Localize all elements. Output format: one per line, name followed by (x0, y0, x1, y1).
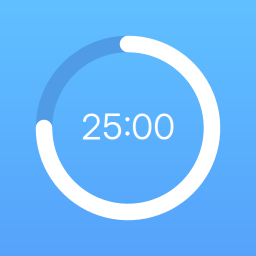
staticText: 25:00 (81, 105, 175, 148)
button[interactable]: Start or pause timer, 25 minutes remaini… (0, 0, 256, 256)
